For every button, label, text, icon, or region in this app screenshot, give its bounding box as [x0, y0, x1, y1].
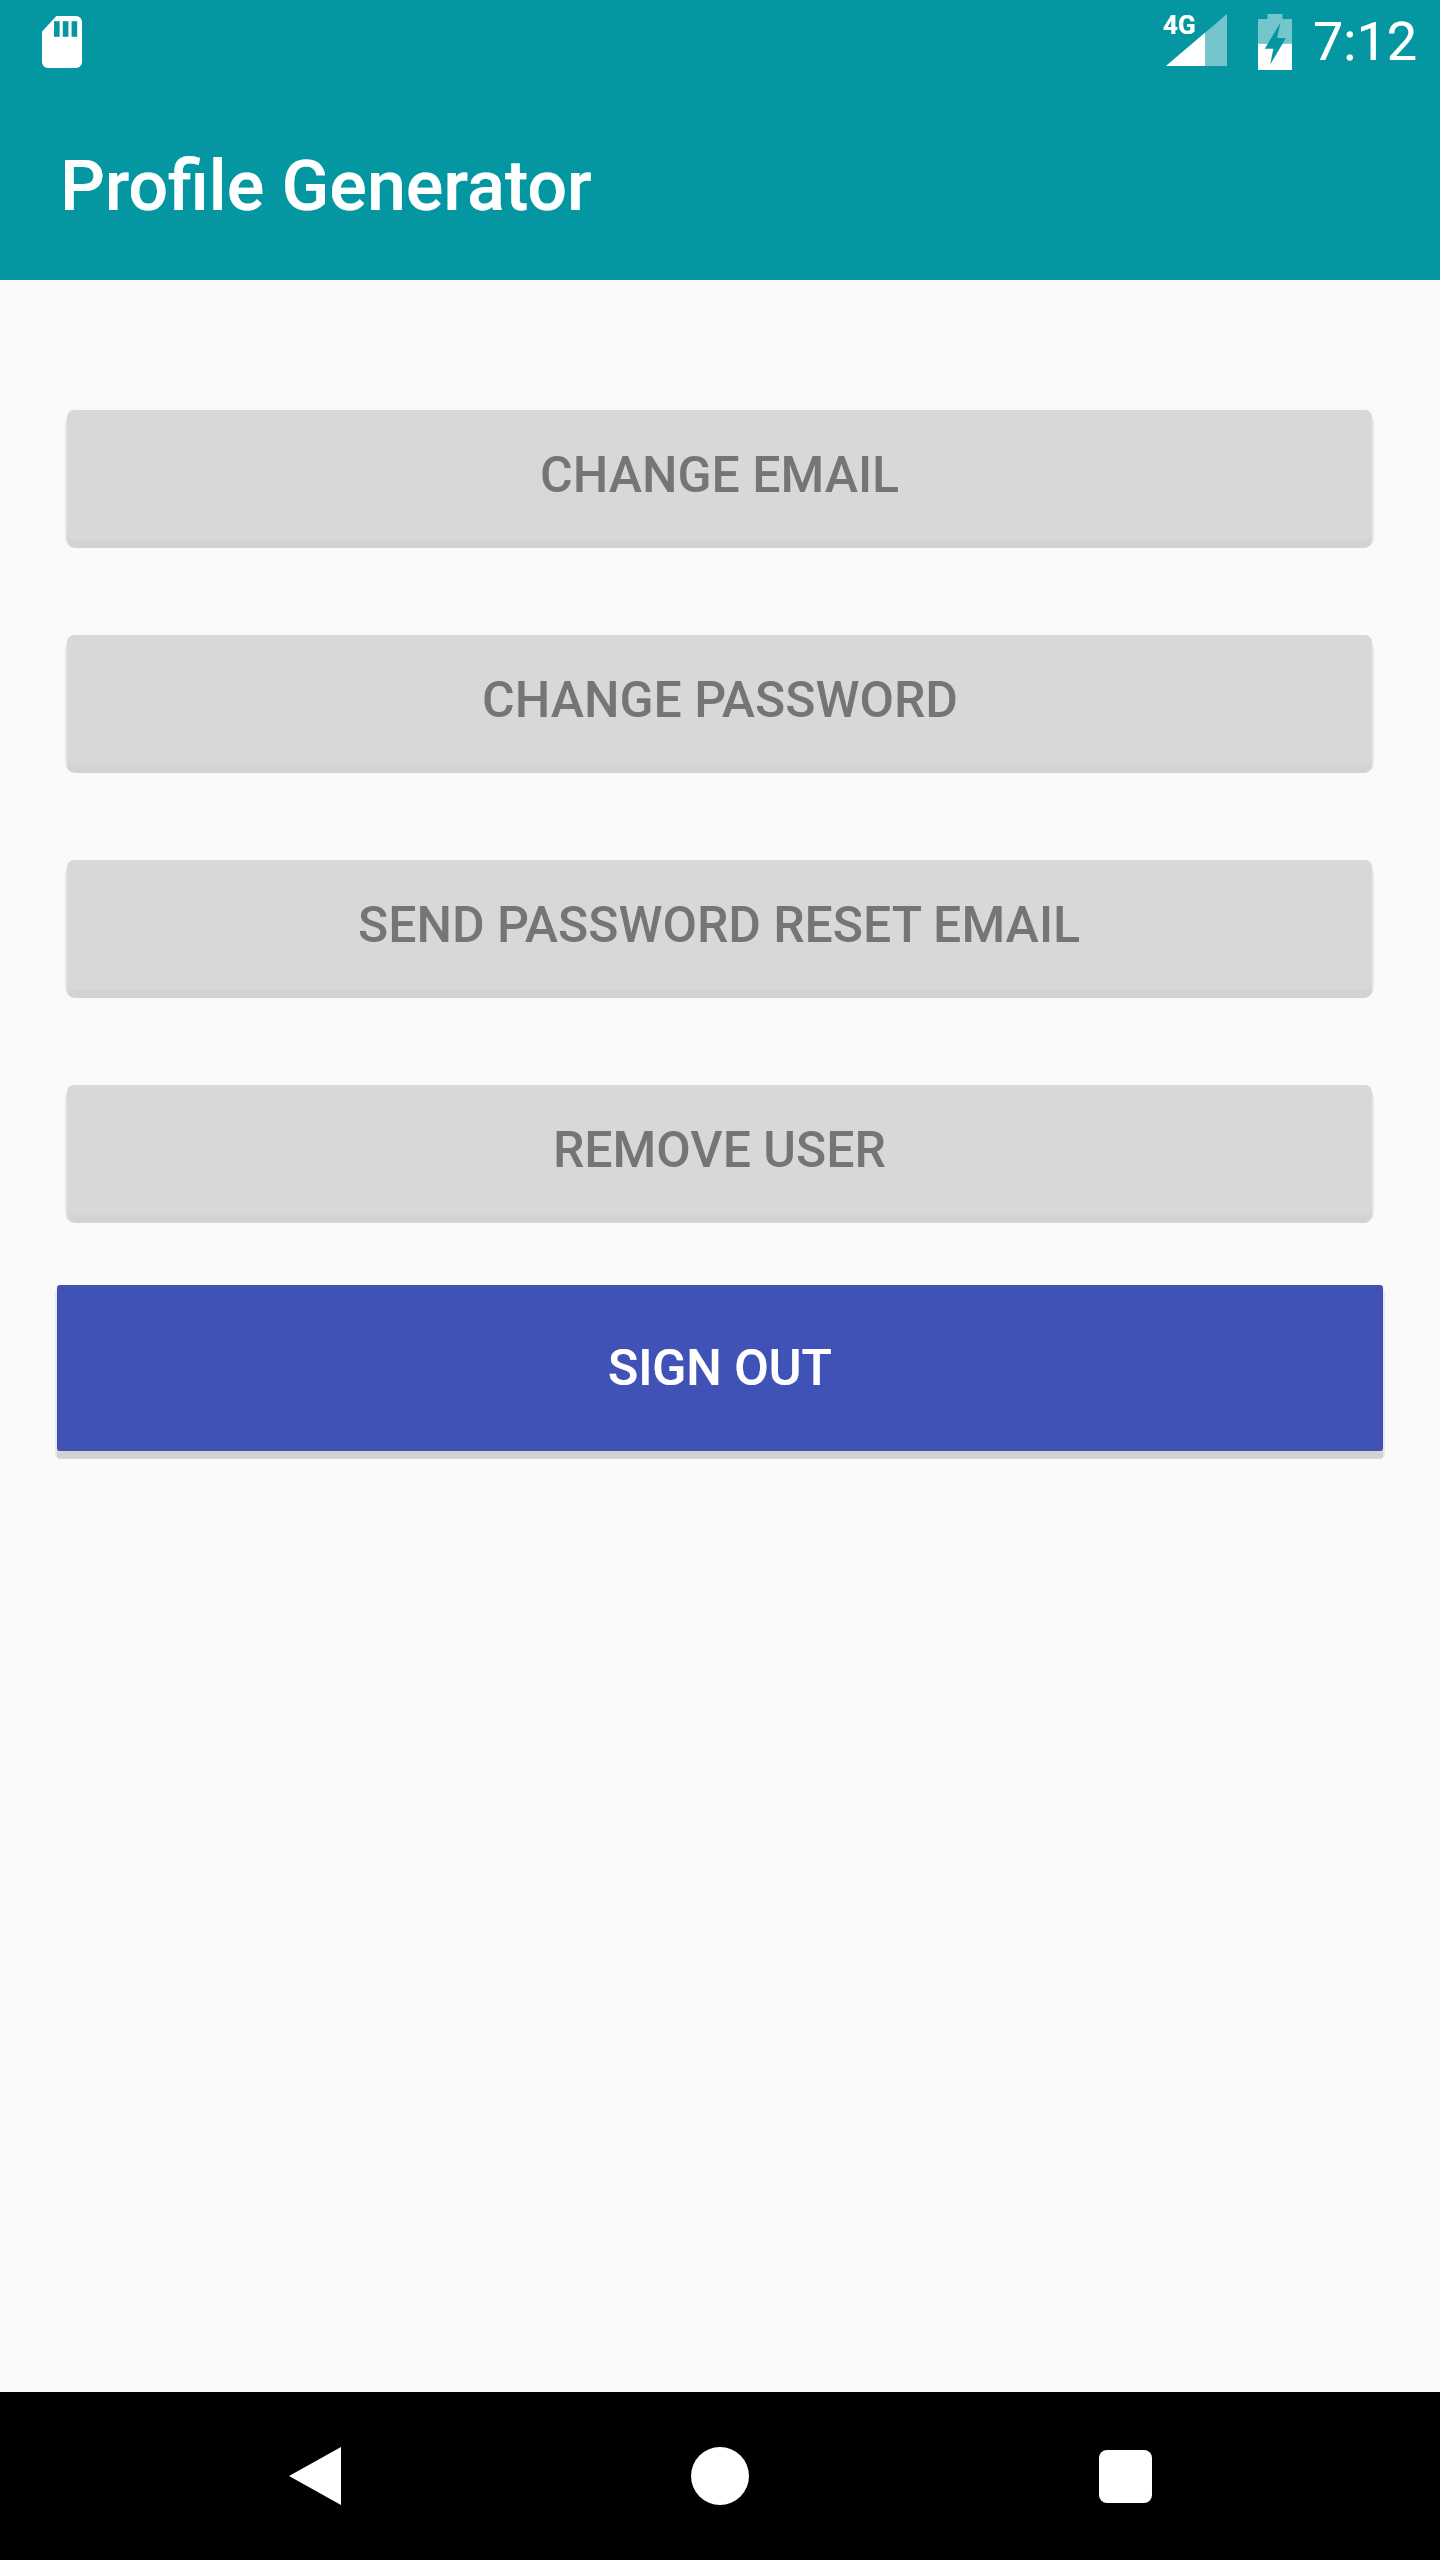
- staticText: CHANGE PASSWORD: [482, 671, 958, 730]
- button[interactable]: [670, 2426, 770, 2526]
- button[interactable]: CHANGE EMAIL: [67, 410, 1372, 540]
- button[interactable]: SEND PASSWORD RESET EMAIL: [67, 860, 1372, 990]
- staticText: SEND PASSWORD RESET EMAIL: [358, 896, 1081, 955]
- button[interactable]: [265, 2426, 365, 2526]
- staticText: CHANGE EMAIL: [540, 446, 900, 505]
- staticText: 4G: [1163, 10, 1196, 40]
- button[interactable]: [1075, 2426, 1175, 2526]
- button[interactable]: REMOVE USER: [67, 1085, 1372, 1215]
- staticText: REMOVE USER: [553, 1121, 886, 1180]
- staticText: Profile Generator: [60, 145, 592, 227]
- staticText: SIGN OUT: [608, 1339, 832, 1398]
- staticText: 7:12: [1313, 10, 1418, 73]
- button[interactable]: SIGN OUT: [57, 1285, 1383, 1451]
- button[interactable]: CHANGE PASSWORD: [67, 635, 1372, 765]
